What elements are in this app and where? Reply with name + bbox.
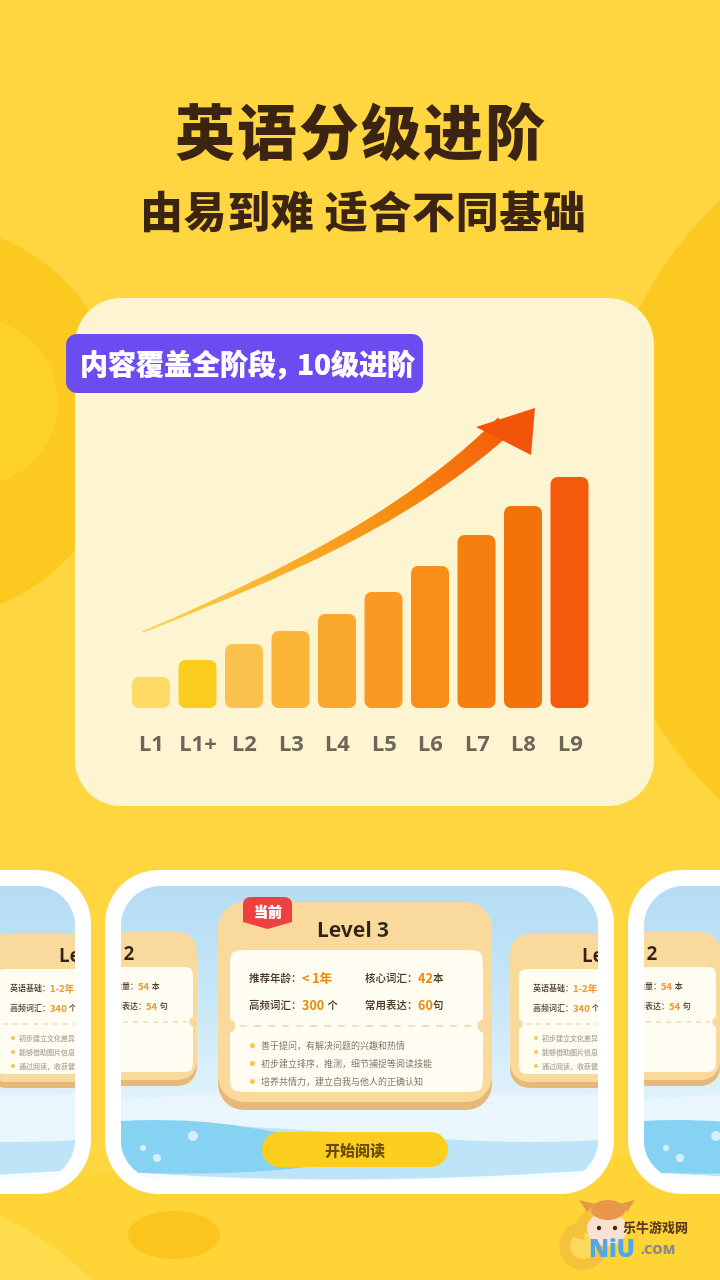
staticText: 高频词汇： xyxy=(10,1002,50,1014)
staticText: L1 xyxy=(139,727,164,757)
staticText: Level 2 xyxy=(644,940,658,966)
staticText: 当前 xyxy=(254,901,282,921)
staticText: Level 1 xyxy=(582,942,598,968)
staticText: 通过阅读，收获健康认知 xyxy=(19,1061,75,1071)
staticText: 60 xyxy=(418,995,433,1013)
staticText: NiU xyxy=(589,1231,635,1264)
staticText: L2 xyxy=(232,727,257,757)
staticText: L6 xyxy=(418,727,443,757)
staticText: 初步建立文化差异的认知 xyxy=(19,1033,75,1043)
staticText: 本 xyxy=(433,970,444,985)
button[interactable]: Level 2 xyxy=(644,932,720,1086)
staticText: 开始阅读 xyxy=(325,1139,386,1161)
staticText: 推荐年龄： xyxy=(249,970,302,985)
staticText: 42 xyxy=(418,968,433,986)
staticText: 54 xyxy=(146,999,158,1013)
staticText: 初步建立文化差异的认知 xyxy=(542,1033,598,1043)
staticText: 能够借助图片信息，理解 xyxy=(542,1047,598,1057)
staticText: ， xyxy=(274,343,303,384)
staticText: 句 xyxy=(433,997,444,1012)
staticText: L8 xyxy=(511,727,536,757)
staticText: 英语基础： xyxy=(533,982,573,994)
staticText: 句 xyxy=(158,1000,168,1012)
button[interactable]: Level 1 xyxy=(510,934,598,1088)
staticText: 善于提问，有解决问题的兴趣和热情 xyxy=(261,1039,406,1052)
staticText: Level 1 xyxy=(59,942,75,968)
staticText: L3 xyxy=(279,727,304,757)
staticText: 句 xyxy=(681,1000,691,1012)
staticText: 阅读量： xyxy=(121,980,138,992)
staticText: 核心词汇： xyxy=(365,970,418,985)
staticText: 英语分级进阶 xyxy=(175,85,547,172)
staticText: L1+ xyxy=(179,727,217,757)
staticText: 培养共情力，建立自我与他人的正确认知 xyxy=(261,1075,424,1088)
staticText: L7 xyxy=(465,727,490,757)
button[interactable]: Level 2 xyxy=(121,932,197,1086)
staticText: 本 xyxy=(673,980,683,992)
staticText: 常用表达： xyxy=(644,1000,669,1012)
staticText: 英语基础： xyxy=(10,982,50,994)
staticText: < 1年 xyxy=(302,968,333,986)
staticText: Level 3 xyxy=(317,915,390,944)
staticText: .COM xyxy=(641,1240,676,1258)
button[interactable]: 开始阅读 xyxy=(262,1132,448,1167)
staticText: 54 xyxy=(661,979,673,993)
staticText: 本 xyxy=(150,980,160,992)
staticText: L5 xyxy=(372,727,397,757)
staticText: Level 2 xyxy=(121,940,135,966)
staticText: 个 xyxy=(325,997,338,1012)
staticText: 1-2年 xyxy=(573,981,598,995)
staticText: L9 xyxy=(558,727,583,757)
staticText: 由易到难 适合不同基础 xyxy=(140,178,587,240)
staticText: 高频词汇： xyxy=(249,997,302,1012)
staticText: 340 xyxy=(573,1001,590,1015)
staticText: 300 xyxy=(302,995,325,1013)
staticText: 内容覆盖全阶段 xyxy=(80,343,277,384)
staticText: 10级进阶 xyxy=(297,343,416,384)
staticText: 初步建立排序，推测，细节捕捉等阅读技能 xyxy=(261,1057,433,1070)
staticText: 个 xyxy=(590,1002,598,1014)
button[interactable]: Level 1 xyxy=(0,934,75,1088)
staticText: 高频词汇： xyxy=(533,1002,573,1014)
button[interactable]: 内容覆盖全阶段 xyxy=(66,334,423,393)
staticText: 常用表达： xyxy=(121,1000,146,1012)
staticText: 1-2年 xyxy=(50,981,75,995)
staticText: 能够借助图片信息，理解 xyxy=(19,1047,75,1057)
staticText: 通过阅读，收获健康认知 xyxy=(542,1061,598,1071)
staticText: 54 xyxy=(669,999,681,1013)
staticText: 340 xyxy=(50,1001,67,1015)
staticText: 54 xyxy=(138,979,150,993)
staticText: 阅读量： xyxy=(644,980,661,992)
staticText: 个 xyxy=(67,1002,75,1014)
staticText: 乐牛游戏网 xyxy=(623,1217,689,1236)
staticText: 常用表达： xyxy=(365,997,418,1012)
staticText: L4 xyxy=(325,727,350,757)
